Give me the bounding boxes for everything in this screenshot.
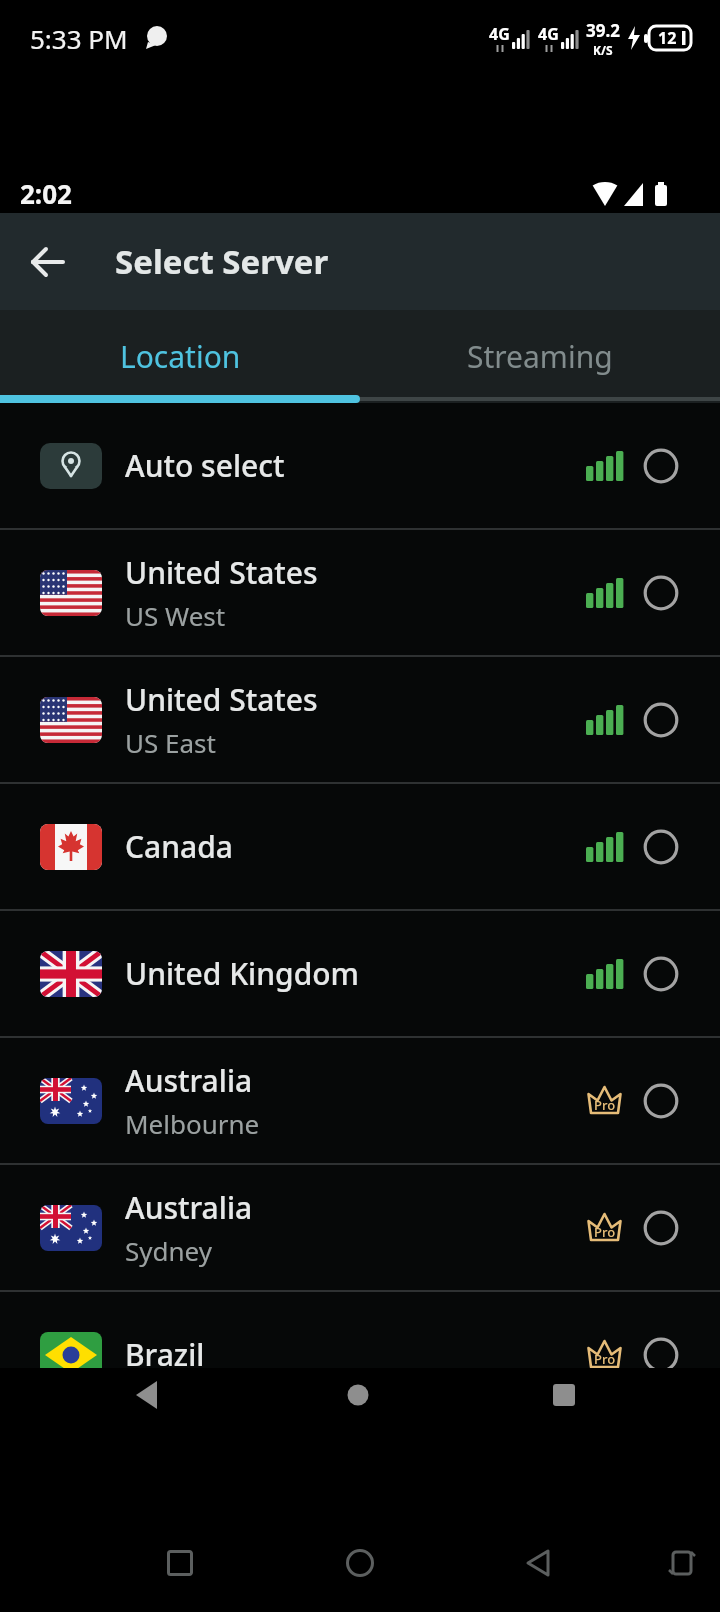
button[interactable]: Australia — [0, 1038, 720, 1163]
button[interactable]: Brazil — [0, 1292, 720, 1368]
button[interactable] — [336, 1539, 384, 1587]
button[interactable] — [334, 1371, 382, 1419]
button[interactable]: Location — [0, 318, 360, 395]
staticText: Australia — [125, 1187, 253, 1228]
staticText: Canada — [125, 826, 233, 867]
staticText: Pro — [594, 1350, 616, 1368]
button[interactable] — [125, 1371, 173, 1419]
button[interactable]: United States — [0, 530, 720, 655]
staticText: 2:02 — [20, 176, 72, 211]
staticText: Pro — [594, 1096, 616, 1114]
staticText: United States — [125, 679, 318, 720]
staticText: Location — [120, 336, 241, 377]
staticText: Pro — [594, 1223, 616, 1241]
staticText: 12 — [658, 27, 677, 49]
staticText: 4G — [538, 23, 559, 45]
staticText: United Kingdom — [125, 953, 359, 994]
staticText: 39.2 — [586, 19, 620, 42]
staticText: United States — [125, 552, 318, 593]
staticText: Brazil — [125, 1334, 205, 1368]
staticText: Sydney — [125, 1233, 212, 1268]
button[interactable] — [14, 213, 82, 310]
staticText: 5:33 PM — [30, 21, 128, 56]
button[interactable] — [515, 1539, 563, 1587]
staticText: Select Server — [115, 239, 329, 284]
staticText: Auto select — [125, 445, 285, 486]
button[interactable] — [540, 1371, 588, 1419]
button[interactable]: Australia — [0, 1165, 720, 1290]
button[interactable]: United States — [0, 657, 720, 782]
button[interactable]: United Kingdom — [0, 911, 720, 1036]
button[interactable] — [658, 1539, 706, 1587]
staticText: Melbourne — [125, 1106, 260, 1141]
staticText: US West — [125, 598, 226, 633]
button[interactable]: Streaming — [360, 318, 720, 395]
staticText: Streaming — [467, 336, 613, 377]
staticText: US East — [125, 725, 216, 760]
staticText: 4G — [489, 23, 510, 45]
button[interactable]: Auto select — [0, 403, 720, 528]
button[interactable] — [156, 1539, 204, 1587]
button[interactable]: Canada — [0, 784, 720, 909]
staticText: K/S — [593, 42, 613, 58]
staticText: Australia — [125, 1060, 253, 1101]
